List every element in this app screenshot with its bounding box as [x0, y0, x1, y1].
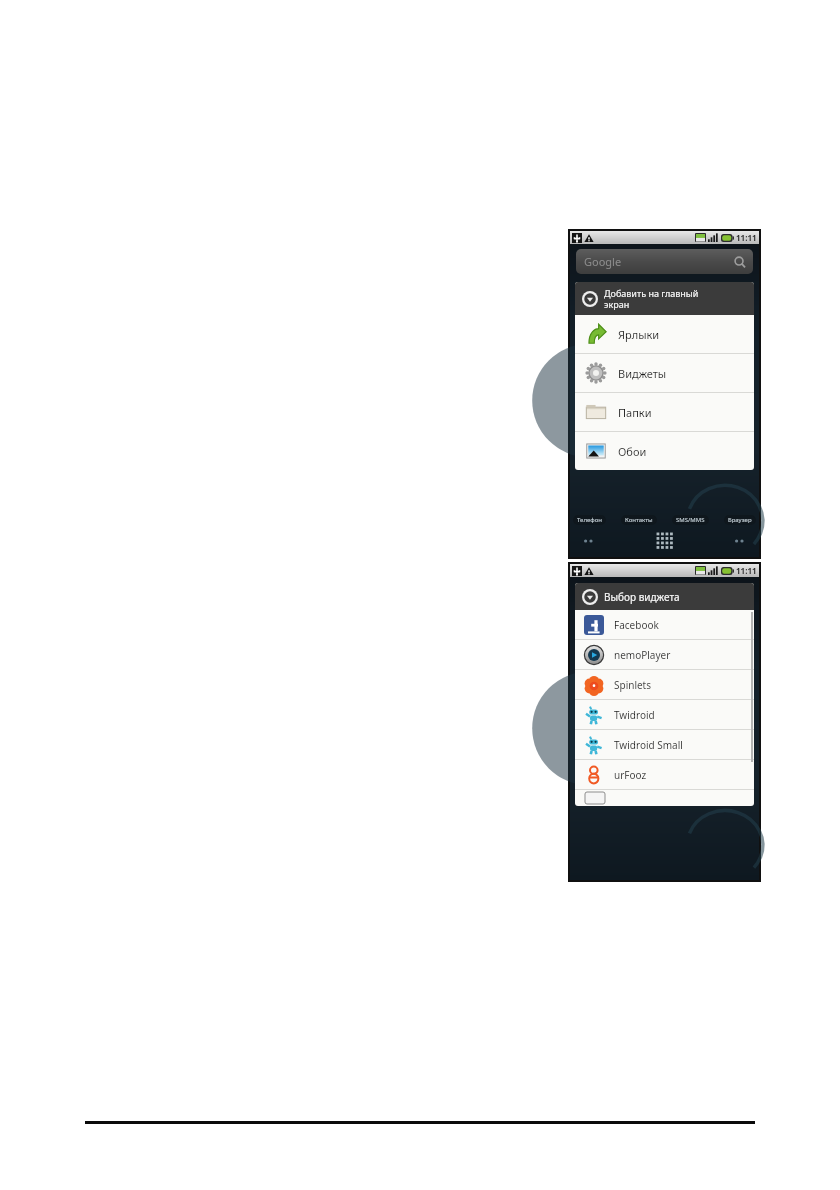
button[interactable]: Контакты	[621, 515, 657, 525]
button[interactable]: Facebook	[575, 610, 754, 639]
staticText: urFooz	[614, 768, 647, 782]
button[interactable]: Папки	[575, 393, 754, 431]
staticText: 11:11	[736, 232, 757, 243]
button[interactable]: Google	[576, 249, 753, 274]
staticText: Выбор виджета	[604, 590, 680, 604]
staticText: Spinlets	[614, 678, 652, 692]
button[interactable]: Браузер	[724, 515, 756, 525]
staticText: 11:11	[736, 565, 757, 576]
staticText: Браузер	[728, 516, 752, 524]
button[interactable]: Ярлыки	[575, 315, 754, 353]
staticText: Ярлыки	[618, 327, 660, 342]
button[interactable]: Телефон	[573, 515, 606, 525]
button[interactable]: SMS/MMS	[672, 515, 709, 525]
staticText: Facebook	[614, 618, 659, 632]
button[interactable]: Обои	[575, 432, 754, 470]
staticText: SMS/MMS	[676, 516, 705, 524]
button[interactable]: Виджеты	[575, 354, 754, 392]
button[interactable]: Twidroid Small	[575, 730, 754, 759]
staticText: Обои	[618, 444, 647, 459]
button[interactable]: urFooz	[575, 760, 754, 789]
staticText: Контакты	[625, 516, 653, 524]
button[interactable]: Spinlets	[575, 670, 754, 699]
staticText: Twidroid	[614, 708, 655, 722]
staticText: Добавить на главный экран	[604, 287, 699, 310]
staticText: Google	[584, 254, 622, 269]
button[interactable]: nemoPlayer	[575, 640, 754, 669]
staticText: Телефон	[577, 516, 602, 524]
staticText: Twidroid Small	[614, 738, 683, 752]
staticText: nemoPlayer	[614, 648, 671, 662]
other: All apps	[656, 532, 674, 550]
button[interactable]: Twidroid	[575, 700, 754, 729]
staticText: Виджеты	[618, 366, 667, 381]
staticText: Папки	[618, 405, 652, 420]
button[interactable]	[575, 790, 754, 806]
